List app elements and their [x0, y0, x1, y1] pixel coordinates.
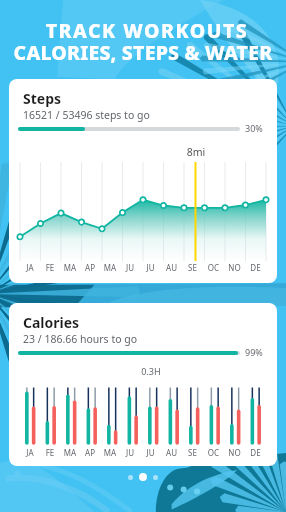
- staticText: CALORIES, STEPS & WATER: [0, 39, 286, 66]
- staticText: TRACK WORKOUTS: [4, 17, 286, 44]
- staticText: 30%: [245, 122, 263, 134]
- staticText: MA: [100, 262, 120, 273]
- staticText: 8mi: [186, 145, 206, 159]
- staticText: FE: [40, 262, 60, 273]
- staticText: MA: [60, 447, 80, 458]
- staticText: JU: [140, 447, 161, 458]
- staticText: AP: [80, 447, 100, 458]
- staticText: JU: [120, 262, 140, 273]
- button[interactable]: Page 2: [139, 473, 147, 481]
- staticText: JA: [20, 447, 40, 458]
- staticText: JA: [20, 262, 40, 273]
- button[interactable]: Page 1: [128, 475, 133, 480]
- button[interactable]: Page 3: [153, 475, 158, 480]
- staticText: AU: [161, 447, 182, 458]
- staticText: AU: [161, 262, 182, 273]
- staticText: 99%: [245, 346, 263, 358]
- staticText: NO: [224, 447, 245, 458]
- button[interactable]: Calories: [9, 303, 277, 466]
- staticText: DE: [245, 447, 266, 458]
- staticText: OC: [203, 447, 224, 458]
- staticText: 0.3H: [140, 365, 162, 377]
- staticText: JU: [140, 262, 161, 273]
- staticText: FE: [40, 447, 60, 458]
- staticText: JU: [120, 447, 140, 458]
- staticText: NO: [224, 262, 245, 273]
- button[interactable]: Steps: [9, 79, 277, 283]
- staticText: SE: [182, 262, 203, 273]
- staticText: OC: [203, 262, 224, 273]
- staticText: MA: [60, 262, 80, 273]
- staticText: 16521 / 53496 steps to go: [23, 108, 150, 122]
- staticText: SE: [182, 447, 203, 458]
- staticText: MA: [100, 447, 120, 458]
- staticText: Steps: [23, 89, 62, 108]
- staticText: 23 / 186.66 hours to go: [23, 332, 138, 346]
- staticText: DE: [245, 262, 266, 273]
- staticText: Calories: [23, 313, 80, 332]
- staticText: AP: [80, 262, 100, 273]
